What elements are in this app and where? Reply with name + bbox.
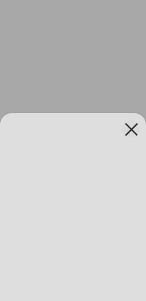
button[interactable]: Close — [122, 120, 140, 138]
